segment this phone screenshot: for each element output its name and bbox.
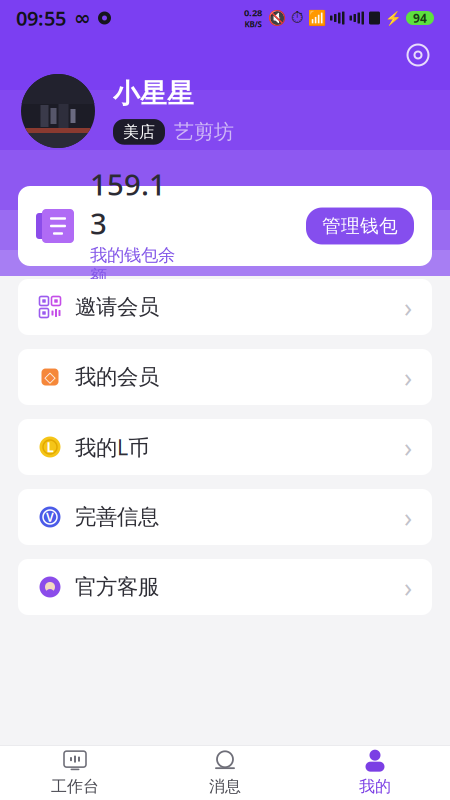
staticText: 09:55 xyxy=(16,5,66,31)
button[interactable]: 邀请会员 xyxy=(0,279,450,335)
button[interactable]: 工作台 xyxy=(0,746,150,800)
button[interactable]: L xyxy=(0,419,450,475)
staticText: 📶 xyxy=(308,10,326,26)
staticText: 159.13 xyxy=(90,165,166,243)
staticText: 艺剪坊 xyxy=(174,120,234,144)
staticText: 工作台 xyxy=(51,777,99,796)
staticText: › xyxy=(404,289,412,325)
staticText: 美店 xyxy=(123,122,155,142)
staticText: ◇ xyxy=(44,369,55,385)
staticText: ∞ xyxy=(74,7,91,29)
staticText: 官方客服 xyxy=(75,574,159,600)
staticText: › xyxy=(404,499,412,535)
staticText: 消息 xyxy=(209,777,241,796)
staticText: 我的L币 xyxy=(75,433,149,461)
staticText: 0.28 xyxy=(244,6,262,19)
staticText: › xyxy=(404,359,412,395)
staticText: 管理钱包 xyxy=(322,214,398,237)
staticText: 完善信息 xyxy=(75,504,159,530)
staticText: 邀请会员 xyxy=(75,294,159,320)
staticText: 我的会员 xyxy=(75,364,159,390)
staticText: KB/S xyxy=(244,19,261,29)
button[interactable]: 头像 xyxy=(21,74,95,148)
staticText: ⏱ xyxy=(291,10,303,26)
button[interactable]: V xyxy=(0,489,450,545)
button[interactable]: 我的 xyxy=(300,746,450,800)
staticText: 小星星 xyxy=(113,77,194,110)
staticText: ⚡ xyxy=(385,10,402,26)
button[interactable]: 消息 xyxy=(150,746,300,800)
staticText: › xyxy=(404,429,412,465)
staticText: 🔇 xyxy=(268,10,286,26)
staticText: › xyxy=(404,569,412,605)
button[interactable]: ◇ xyxy=(0,349,450,405)
staticText: L xyxy=(46,438,53,456)
staticText: 我的 xyxy=(359,777,391,796)
button[interactable]: 设置 xyxy=(398,37,438,73)
staticText: 94 xyxy=(413,10,427,26)
staticText: 我的钱包余额 xyxy=(90,245,175,287)
button[interactable]: 官方客服 xyxy=(0,559,450,615)
staticText: V xyxy=(46,509,54,525)
button[interactable]: 管理钱包 xyxy=(306,207,414,244)
